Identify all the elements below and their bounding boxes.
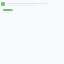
button[interactable]: Primary action: [3, 9, 13, 11]
button[interactable]: App icon: [1, 2, 63, 6]
button[interactable]: App icon: [1, 2, 5, 6]
